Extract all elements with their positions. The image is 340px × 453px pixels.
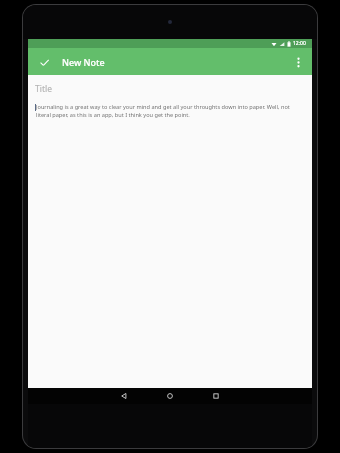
- button[interactable]: Back: [107, 388, 141, 404]
- button[interactable]: Save note: [34, 52, 54, 72]
- button[interactable]: Home: [153, 388, 187, 404]
- staticText: Journaling is a great way to clear your …: [36, 103, 305, 119]
- button[interactable]: Recent apps: [199, 388, 233, 404]
- staticText: Title: [35, 83, 52, 95]
- staticText: New Note: [62, 56, 105, 68]
- staticText: 12:00: [293, 40, 306, 47]
- button[interactable]: More options: [288, 52, 308, 72]
- button[interactable]: Title: [35, 83, 305, 95]
- button[interactable]: Journaling is a great way to clear your …: [35, 103, 305, 119]
